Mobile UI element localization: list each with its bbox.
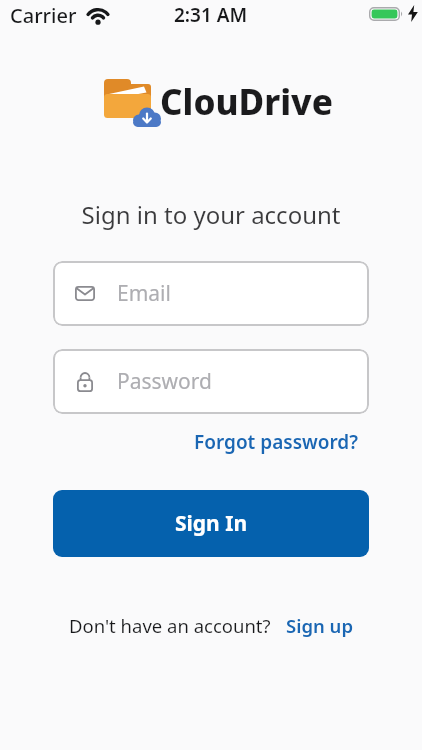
- staticText: Sign up: [286, 613, 353, 638]
- staticText: Carrier: [10, 2, 77, 29]
- staticText: 2:31 AM: [174, 2, 248, 28]
- staticText: Password: [117, 367, 212, 396]
- staticText: Sign In: [175, 509, 248, 538]
- staticText: Sign in to your account: [0, 198, 422, 231]
- staticText: Email: [117, 279, 171, 308]
- button[interactable]: Sign up: [286, 613, 353, 638]
- button[interactable]: Sign In: [53, 490, 369, 557]
- button[interactable]: Password: [53, 349, 369, 414]
- button[interactable]: Email: [53, 261, 369, 326]
- staticText: ClouDrive: [160, 78, 333, 126]
- button[interactable]: Forgot password?: [194, 429, 359, 455]
- staticText: Forgot password?: [194, 429, 359, 455]
- staticText: Don't have an account?: [69, 613, 271, 638]
